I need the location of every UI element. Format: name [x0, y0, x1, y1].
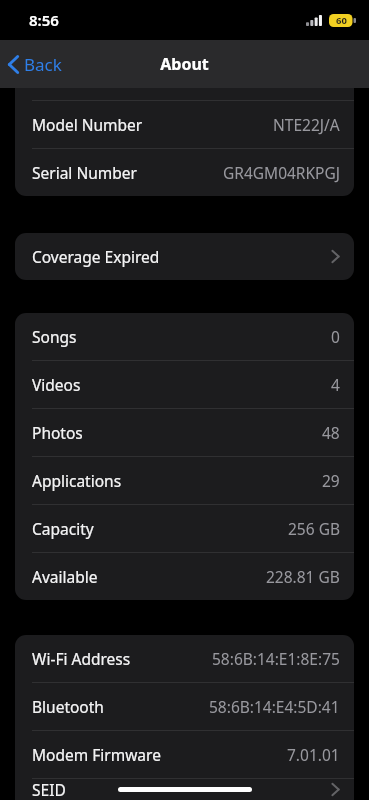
staticText: Bluetooth: [32, 696, 104, 717]
button[interactable]: Coverage Expired: [15, 233, 354, 280]
button[interactable]: Wi-Fi Address: [15, 635, 354, 682]
button[interactable]: Serial Number: [15, 149, 354, 196]
staticText: Wi-Fi Address: [32, 648, 131, 669]
button[interactable]: Bluetooth: [15, 683, 354, 730]
staticText: About: [160, 53, 209, 75]
button[interactable]: SEID: [15, 779, 354, 800]
staticText: 58:6B:14:E4:5D:41: [209, 696, 340, 717]
button[interactable]: Songs: [15, 313, 354, 360]
button[interactable]: Photos: [15, 409, 354, 456]
staticText: NTE22J/A: [273, 114, 340, 135]
staticText: 8:56: [29, 10, 59, 30]
staticText: 4: [331, 374, 340, 395]
staticText: 256 GB: [288, 518, 340, 539]
staticText: Capacity: [32, 518, 94, 539]
button[interactable]: Back: [0, 47, 72, 82]
button[interactable]: Videos: [15, 361, 354, 408]
staticText: 29: [322, 470, 340, 491]
button[interactable]: Model Number: [15, 101, 354, 148]
button[interactable]: Available: [15, 553, 354, 600]
staticText: 0: [331, 326, 340, 347]
staticText: Model Number: [32, 114, 143, 135]
staticText: Videos: [32, 374, 81, 395]
button[interactable]: Modem Firmware: [15, 731, 354, 778]
staticText: Songs: [32, 326, 77, 347]
staticText: Coverage Expired: [32, 246, 160, 267]
button[interactable]: Capacity: [15, 505, 354, 552]
staticText: SEID: [32, 779, 66, 800]
staticText: GR4GM04RKPGJ: [223, 162, 340, 183]
staticText: Modem Firmware: [32, 744, 161, 765]
button[interactable]: Applications: [15, 457, 354, 504]
staticText: 228.81 GB: [266, 566, 340, 587]
staticText: Back: [24, 53, 62, 76]
staticText: Available: [32, 566, 98, 587]
staticText: 7.01.01: [287, 744, 340, 765]
staticText: 58:6B:14:E1:8E:75: [212, 648, 340, 669]
staticText: Applications: [32, 470, 122, 491]
other: Home indicator: [118, 787, 252, 792]
staticText: Photos: [32, 422, 83, 443]
staticText: Serial Number: [32, 162, 137, 183]
staticText: 48: [322, 422, 340, 443]
staticText: 60: [336, 14, 347, 27]
